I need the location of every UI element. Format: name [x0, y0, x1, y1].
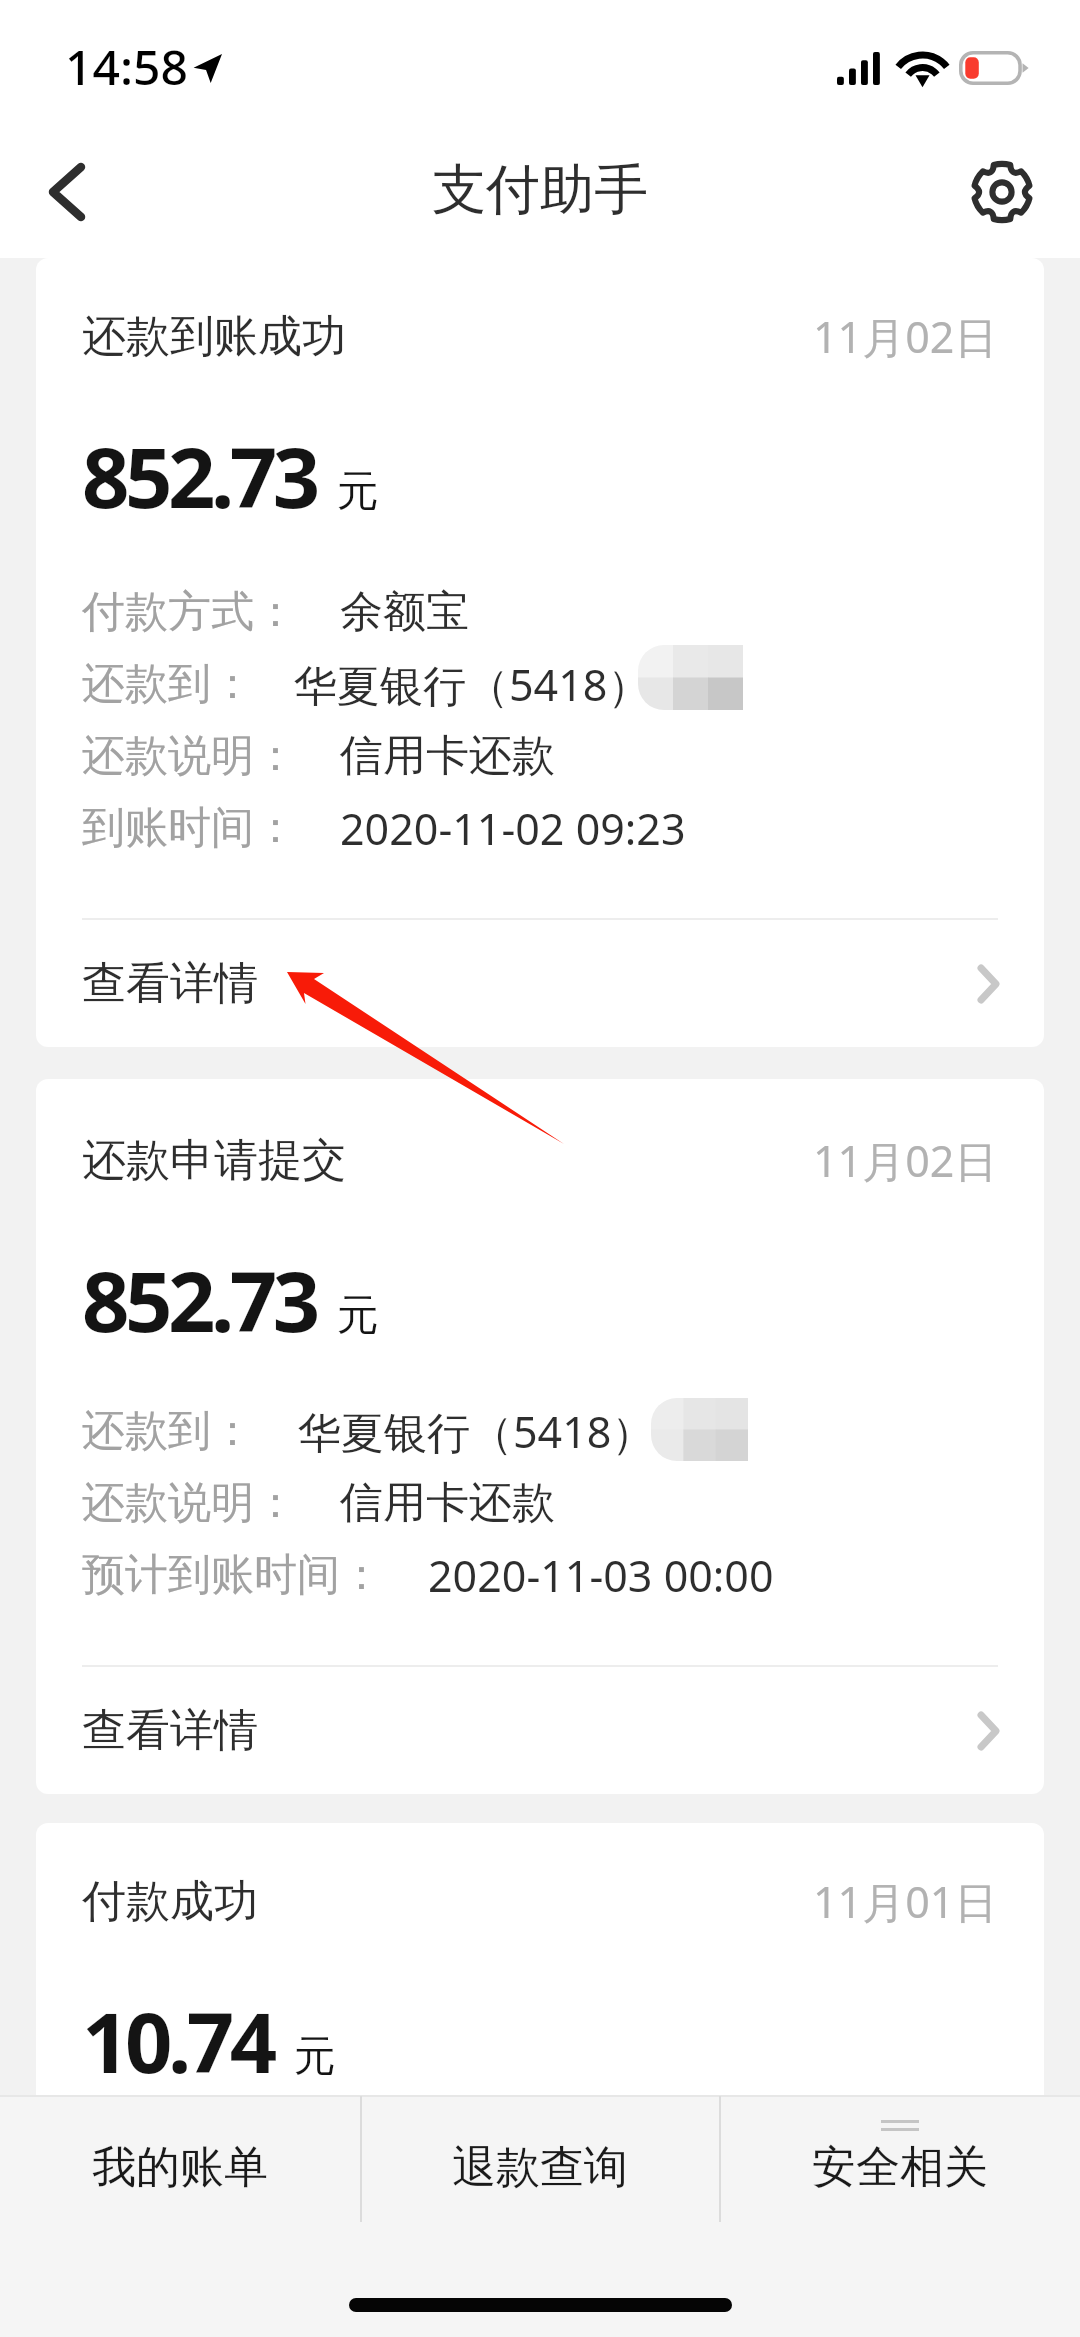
staticText: 余额宝 — [340, 585, 469, 639]
staticText: 2020-11-03 00:00 — [428, 1546, 774, 1605]
staticText: 元 — [337, 1289, 379, 1342]
staticText: 信用卡还款 — [340, 729, 555, 783]
button[interactable]: 查看详情 — [36, 1667, 1044, 1794]
staticText: 付款方式： — [82, 585, 297, 639]
staticText: 还款说明： — [82, 729, 297, 783]
button[interactable]: 安全相关 — [720, 2095, 1080, 2223]
staticText: 查看详情 — [82, 1703, 258, 1758]
staticText: 元 — [337, 465, 379, 518]
button[interactable]: 付款成功 — [36, 1823, 1044, 2297]
button[interactable]: 还款申请提交 — [36, 1079, 1044, 1665]
staticText: 付款成功 — [82, 1874, 258, 1929]
staticText: 支付助手 — [432, 156, 648, 224]
button[interactable]: Back — [0, 125, 130, 258]
staticText: 2020-11-02 09:23 — [340, 799, 686, 858]
staticText: 还款申请提交 — [82, 1133, 346, 1188]
staticText: 852.73 — [82, 419, 316, 532]
button[interactable]: Settings — [954, 125, 1080, 258]
staticText: 安全相关 — [812, 2140, 988, 2195]
staticText: 我的账单 — [92, 2140, 268, 2195]
staticText: 退款查询 — [452, 2140, 628, 2195]
staticText: 还款到账成功 — [82, 309, 346, 364]
button[interactable]: 我的账单 — [0, 2095, 360, 2223]
staticText: 信用卡还款 — [340, 1476, 555, 1530]
staticText: 元 — [294, 2030, 336, 2083]
staticText: 11月02日 — [813, 307, 998, 366]
staticText: 852.73 — [82, 1243, 316, 1356]
staticText: 华夏银行（5418） — [298, 1402, 655, 1461]
staticText: 华夏银行（5418） — [294, 655, 651, 714]
staticText: 预计到账时间： — [82, 1548, 383, 1602]
staticText: 还款到： — [82, 657, 254, 711]
staticText: 还款说明： — [82, 1476, 297, 1530]
staticText: 10.74 — [82, 1984, 273, 2097]
button[interactable]: 退款查询 — [360, 2095, 720, 2223]
staticText: 11月01日 — [813, 1872, 998, 1931]
staticText: 到账时间： — [82, 801, 297, 855]
staticText: 14:58 — [65, 34, 188, 99]
staticText: 11月02日 — [813, 1131, 998, 1190]
button[interactable]: 查看详情 — [36, 920, 1044, 1047]
staticText: 查看详情 — [82, 956, 258, 1011]
button[interactable]: 还款到账成功 — [36, 258, 1044, 918]
staticText: 还款到： — [82, 1404, 254, 1458]
